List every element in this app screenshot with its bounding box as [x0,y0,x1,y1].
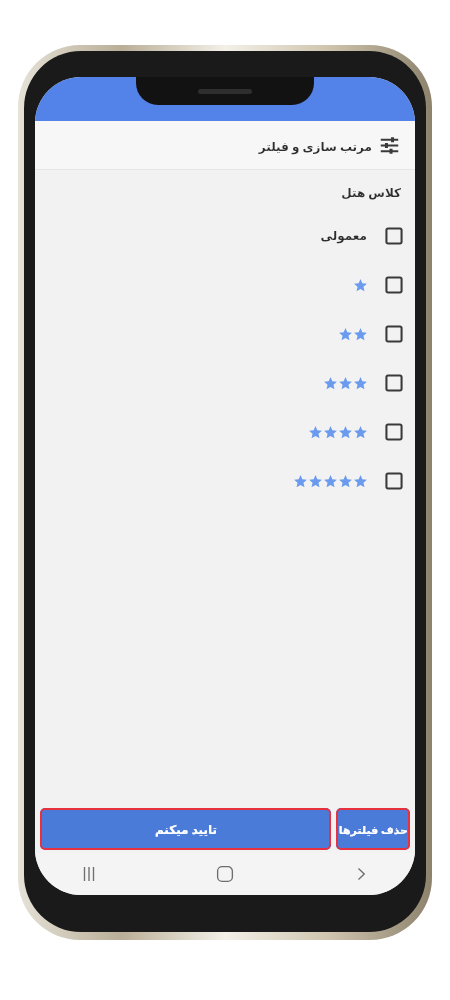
button[interactable]: معمولی [35,211,415,260]
button[interactable] [35,309,415,358]
staticText: تایید میکنم [154,821,217,837]
button[interactable] [35,456,415,505]
button[interactable]: مرتب سازی و فیلتر [254,130,403,161]
button[interactable]: Back [341,854,381,894]
button[interactable]: حذف فیلترها [336,808,410,850]
button[interactable]: تایید میکنم [40,808,331,850]
other: Sort and filter [380,136,399,155]
staticText: کلاس هتل [341,184,401,200]
staticText: معمولی [320,229,367,243]
button[interactable]: Recents [69,854,109,894]
staticText: مرتب سازی و فیلتر [258,138,372,154]
button[interactable]: Home [205,854,245,894]
staticText: حذف فیلترها [338,822,408,837]
button[interactable] [35,260,415,309]
button[interactable] [35,407,415,456]
button[interactable] [35,358,415,407]
